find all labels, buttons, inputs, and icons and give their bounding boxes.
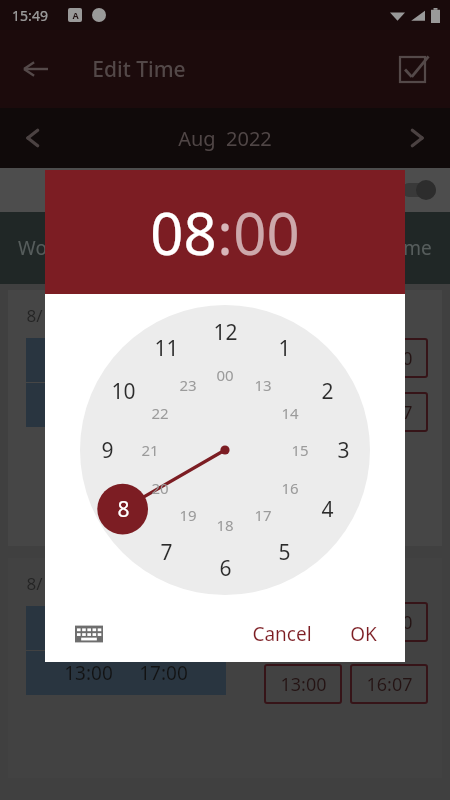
button[interactable]: 16 [273,471,307,505]
button[interactable]: 16:07 [350,392,428,432]
button[interactable]: 6 [204,547,246,589]
staticText: 6 [219,554,232,583]
staticText: 21 [141,440,159,460]
staticText: 15 [291,440,309,460]
button[interactable]: Back [14,47,58,91]
staticText: 11 [154,334,179,363]
staticText: 15:49 [12,6,48,25]
button[interactable]: 8 [102,488,144,530]
button[interactable]: 15 [283,433,317,467]
staticText: 23 [179,375,197,395]
staticText: 8 [117,495,130,524]
button[interactable]: 12 [204,311,246,353]
button[interactable]: 3 [322,429,364,471]
button[interactable]: 10 [102,370,144,412]
staticText: A [72,9,79,21]
staticText: 20 [151,478,169,498]
button[interactable]: Confirm [392,47,436,91]
button[interactable]: 7 [145,531,187,573]
button[interactable]: 9 [86,429,128,471]
button[interactable]: 8/ [8,290,442,546]
staticText: Cancel [252,621,312,647]
staticText: 13:00 [64,660,113,686]
staticText: 2 [321,377,334,406]
button[interactable]: 20 [143,471,177,505]
staticText: OK [350,621,377,647]
staticText: 14 [281,403,299,423]
button[interactable]: 2 [306,370,348,412]
staticText: 8/ [26,304,43,327]
staticText: 3 [337,436,350,465]
button[interactable]: 14 [273,396,307,430]
staticText: 08:00 [280,346,327,371]
staticText: 18 [216,515,234,535]
button[interactable]: Cancel [240,613,324,655]
staticText: 13:00 [280,400,327,425]
button[interactable]: 11 [145,327,187,369]
button[interactable]: 23 [171,368,205,402]
button[interactable]: Previous month [10,115,56,161]
staticText: me [403,235,432,261]
staticText: 08:00 [280,610,327,635]
button[interactable]: 13 [246,368,280,402]
staticText: 16:07 [366,400,413,425]
button[interactable]: 16:07 [350,664,428,704]
button[interactable]: 17 [246,498,280,532]
staticText: 7 [160,538,173,567]
button[interactable]: Toggle [394,175,436,205]
button[interactable]: 18 [208,508,242,542]
staticText: 00 [233,193,300,272]
button[interactable]: 8/ [8,558,442,778]
staticText: 10 [111,377,136,406]
button[interactable]: 21 [133,433,167,467]
staticText: Aug 2022 [178,125,272,152]
button[interactable]: 08 [150,193,217,272]
button[interactable]: Next month [394,115,440,161]
button[interactable]: 13:00 [264,664,342,704]
staticText: 17 [254,505,272,525]
staticText: 00 [216,365,234,385]
button[interactable]: 00 [208,358,242,392]
staticText: 16:07 [366,672,413,697]
staticText: : [217,193,233,272]
button[interactable]: 08:00 [264,602,342,642]
staticText: 19 [179,505,197,525]
staticText: 8/ [26,572,43,595]
button[interactable]: 1 [263,327,305,369]
staticText: 08 [150,193,217,272]
staticText: 12 [213,318,238,347]
button[interactable]: 19 [171,498,205,532]
button[interactable]: 5 [263,531,305,573]
staticText: 16 [281,478,299,498]
button[interactable]: Switch to text input [71,616,107,652]
button[interactable]: 13:00 [264,392,342,432]
button[interactable]: OK [338,613,389,655]
button[interactable]: 4 [306,488,348,530]
staticText: 12:00 [366,346,413,371]
staticText: 17:00 [139,660,188,686]
staticText: Edit Time [92,55,186,84]
staticText: 13 [254,375,272,395]
staticText: 12:00 [366,610,413,635]
staticText: 9 [101,436,114,465]
staticText: 13:00 [280,672,327,697]
staticText: 22 [151,403,169,423]
button[interactable]: 08:00 [264,338,342,378]
staticText: Wo [18,235,47,261]
staticText: 5 [278,538,291,567]
staticText: 4 [321,495,334,524]
staticText: 1 [278,334,291,363]
staticText: 08:00 [64,615,113,641]
button[interactable]: 12:00 [350,602,428,642]
button[interactable]: 00 [233,193,300,272]
button[interactable]: 22 [143,396,177,430]
button[interactable]: 12:00 [350,338,428,378]
